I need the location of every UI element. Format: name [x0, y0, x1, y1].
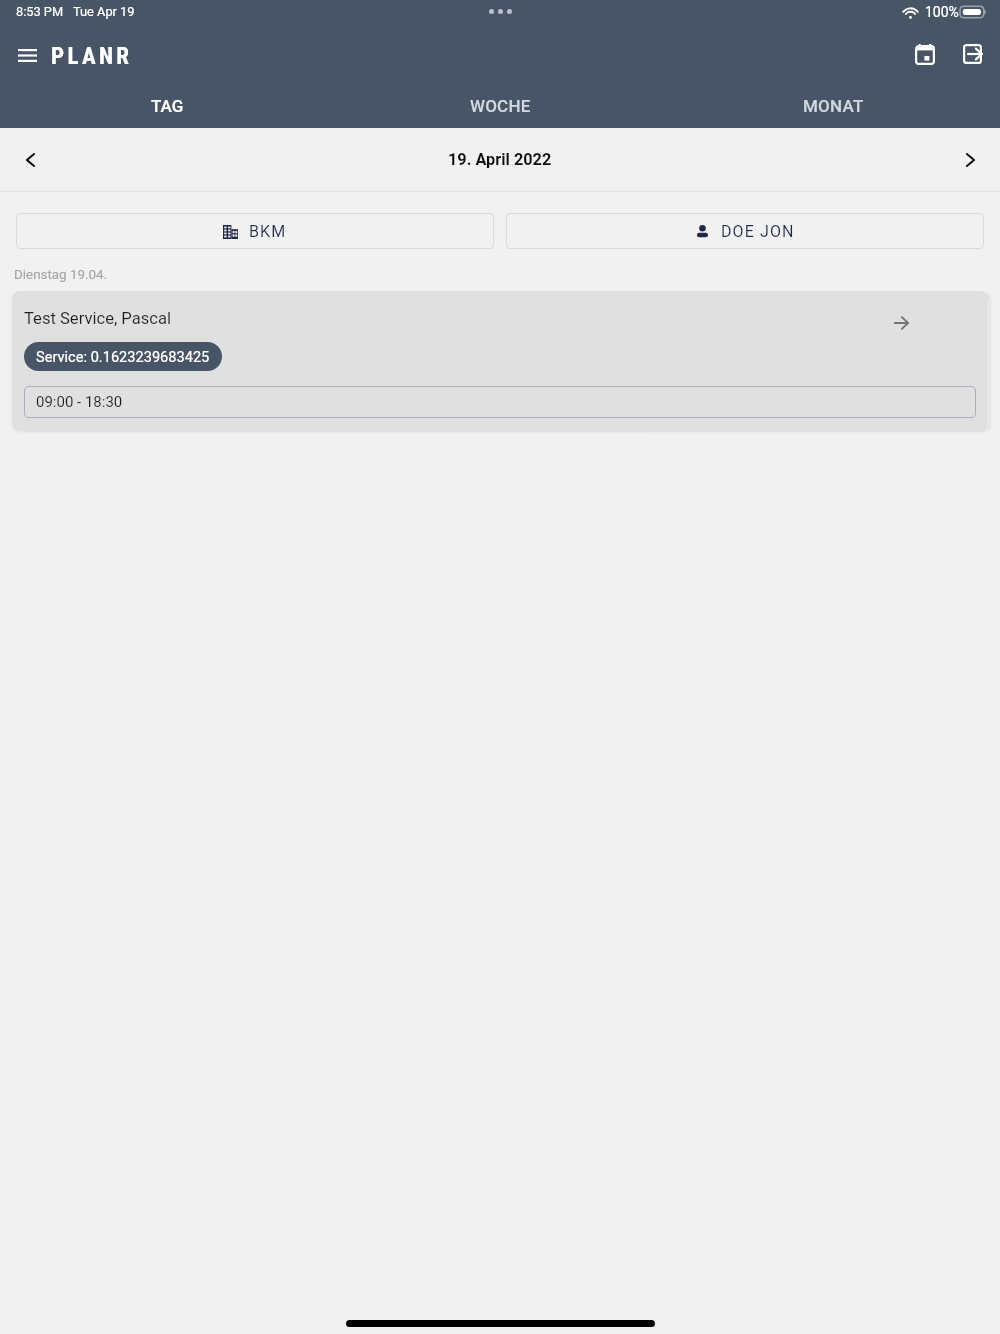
staticText: 8:53 PM [16, 4, 64, 19]
staticText: Tue Apr 19 [73, 4, 135, 19]
staticText: Dienstag 19.04. [14, 267, 108, 283]
staticText: WOCHE [470, 96, 531, 116]
staticText: Test Service, Pascal [24, 309, 172, 328]
button[interactable]: Calendar [903, 32, 947, 76]
staticText: Service: 0.1623239683425 [36, 348, 210, 365]
staticText: DOE JON [721, 222, 795, 241]
staticText: BKM [249, 222, 287, 241]
button[interactable]: Previous day [8, 138, 52, 182]
staticText: 100% [925, 4, 959, 20]
button[interactable]: Test Service, Pascal [12, 291, 988, 431]
staticText: 09:00 - 18:30 [36, 393, 123, 411]
staticText: PLANR [51, 43, 133, 70]
button[interactable]: DOE JON [506, 213, 984, 249]
staticText: TAG [151, 96, 184, 116]
staticText: 19. April 2022 [448, 150, 552, 169]
button[interactable]: BKM [16, 213, 494, 249]
button[interactable]: Open details [885, 307, 917, 339]
button[interactable]: TAG [0, 83, 334, 128]
button[interactable]: Logout [950, 32, 994, 76]
button[interactable]: MONAT [667, 83, 1000, 128]
button[interactable]: Next day [948, 138, 992, 182]
button[interactable]: WOCHE [334, 83, 667, 128]
button[interactable]: Menu [9, 37, 46, 74]
staticText: MONAT [803, 96, 864, 116]
